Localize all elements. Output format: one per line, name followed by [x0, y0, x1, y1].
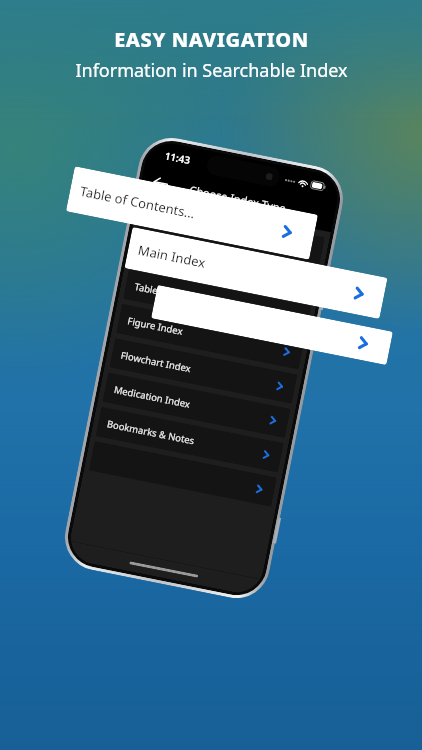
- button[interactable]: Flowchart Index: [109, 338, 298, 404]
- button[interactable]: Table Index: [123, 269, 311, 335]
- staticText: Table of Contents...: [147, 211, 234, 241]
- button[interactable]: Table of Contents...: [66, 166, 318, 260]
- staticText: 11:43: [164, 148, 192, 167]
- staticText: Information in Searchable Index: [75, 58, 348, 83]
- button[interactable]: Medication Index: [102, 372, 291, 438]
- staticText: Flowchart Index: [120, 349, 193, 375]
- button[interactable]: [151, 285, 393, 365]
- staticText: Table Index: [133, 280, 187, 303]
- staticText: EASY NAVIGATION: [114, 26, 309, 53]
- button[interactable]: Main Index: [124, 227, 388, 319]
- button[interactable]: [89, 441, 277, 507]
- button[interactable]: Main Index: [130, 235, 318, 301]
- staticText: Medication Index: [113, 383, 192, 411]
- button[interactable]: Table of Contents...: [137, 201, 325, 267]
- staticText: Table of Contents...: [78, 182, 197, 222]
- staticText: Figure Index: [126, 314, 184, 338]
- button[interactable]: Back: [145, 168, 176, 198]
- staticText: Main Index: [140, 246, 192, 268]
- button[interactable]: Bookmarks & Notes: [96, 407, 284, 473]
- staticText: Choose Index Type: [188, 182, 287, 216]
- button[interactable]: Figure Index: [116, 304, 304, 370]
- staticText: Main Index: [137, 241, 208, 272]
- staticText: Bookmarks & Notes: [106, 417, 196, 447]
